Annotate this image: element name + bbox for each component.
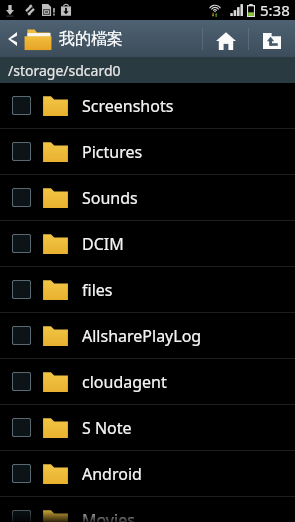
button[interactable]: Select DCIM xyxy=(0,221,295,266)
staticText: 5:38 xyxy=(260,0,290,20)
button[interactable]: Select files xyxy=(12,280,31,299)
staticText: AllsharePlayLog xyxy=(82,325,202,347)
staticText: /storage/sdcard0 xyxy=(8,61,121,80)
button[interactable]: Select Pictures xyxy=(0,129,295,174)
button[interactable]: Select cloudagent xyxy=(0,359,295,404)
button[interactable]: Select AllsharePlayLog xyxy=(0,313,295,358)
button[interactable]: Select Screenshots xyxy=(0,83,295,128)
button[interactable]: Select S Note xyxy=(0,405,295,450)
button[interactable]: Select AllsharePlayLog xyxy=(12,326,31,345)
button[interactable]: Select Movies xyxy=(0,497,295,522)
button[interactable]: Select DCIM xyxy=(12,234,31,253)
button[interactable]: Select Android xyxy=(0,451,295,496)
staticText: Android xyxy=(82,463,142,485)
button[interactable]: Select Sounds xyxy=(12,188,31,207)
staticText: Pictures xyxy=(82,141,143,163)
staticText: Sounds xyxy=(82,187,138,209)
staticText: Movies xyxy=(82,509,135,522)
button[interactable]: Select Screenshots xyxy=(12,96,31,115)
button[interactable]: /storage/sdcard0 xyxy=(0,57,295,83)
staticText: 我的檔案 xyxy=(59,29,123,49)
staticText: Screenshots xyxy=(82,95,174,117)
button[interactable]: Select Movies xyxy=(12,510,31,522)
button[interactable]: Select files xyxy=(0,267,295,312)
button[interactable]: Select Pictures xyxy=(12,142,31,161)
staticText: S Note xyxy=(82,417,132,439)
staticText: files xyxy=(82,279,113,301)
button[interactable]: Up one level xyxy=(249,20,295,57)
button[interactable]: Select Android xyxy=(12,464,31,483)
button[interactable]: Select cloudagent xyxy=(12,372,31,391)
button[interactable]: 我的檔案 xyxy=(0,20,131,57)
button[interactable]: Select Sounds xyxy=(0,175,295,220)
staticText: cloudagent xyxy=(82,371,167,393)
button[interactable]: Home xyxy=(203,20,248,57)
button[interactable]: Select S Note xyxy=(12,418,31,437)
staticText: DCIM xyxy=(82,233,124,255)
